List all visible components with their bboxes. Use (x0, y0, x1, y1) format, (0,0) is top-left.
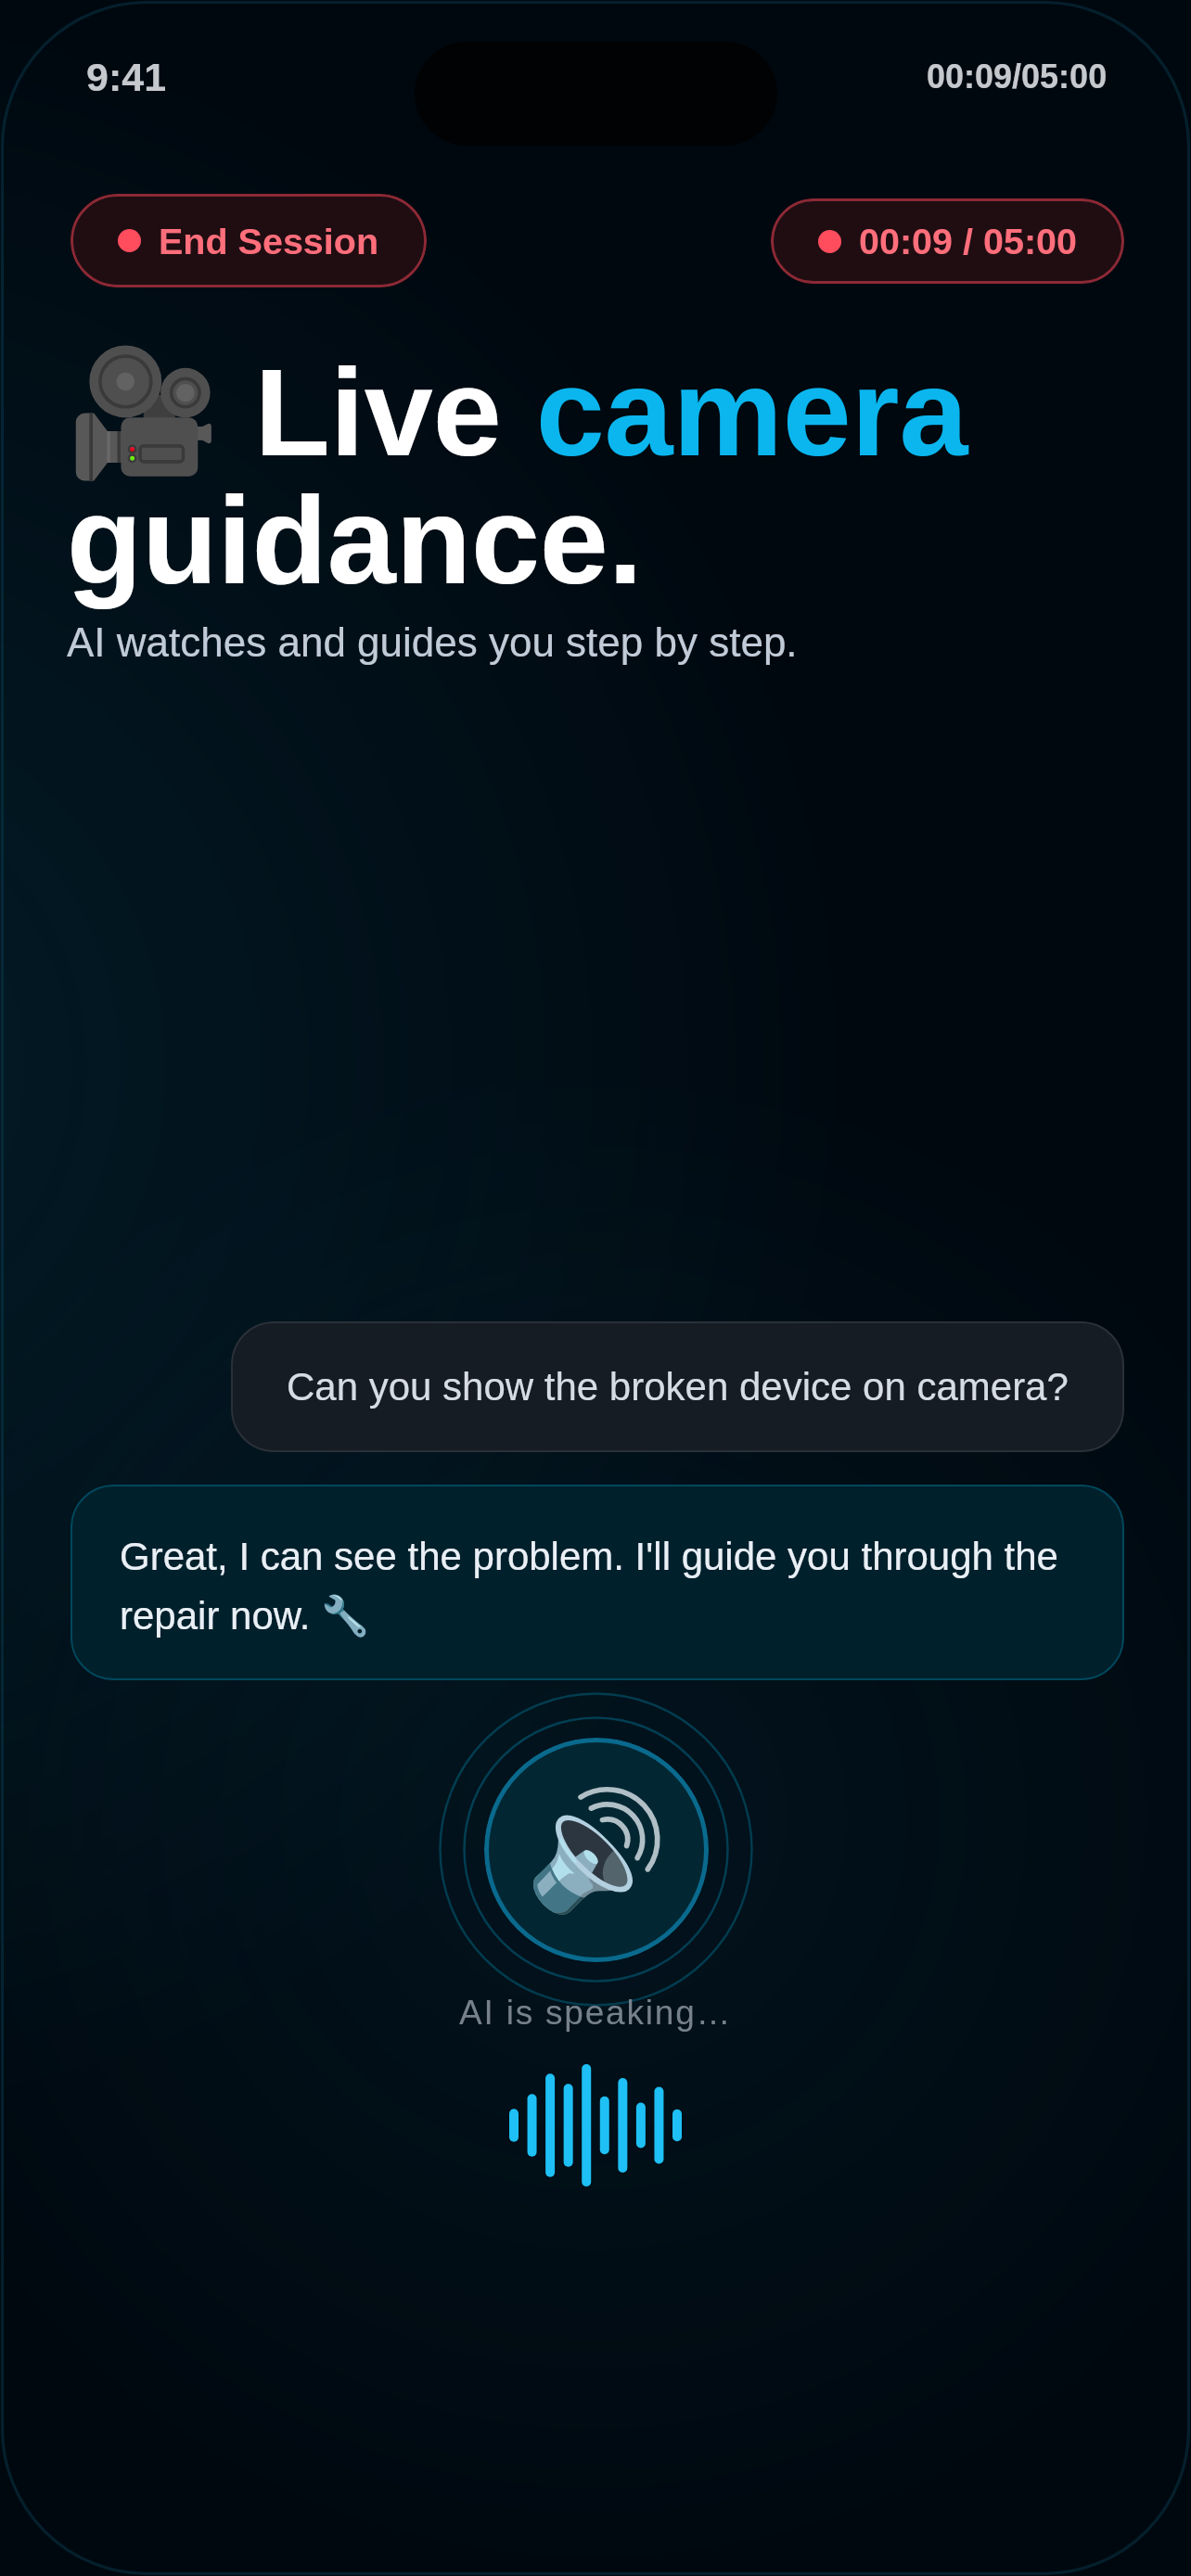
staticText: End Session (159, 221, 379, 261)
staticText: Can you show the broken device on camera… (287, 1364, 1069, 1409)
staticText: 00:09/05:00 (927, 57, 1108, 95)
button[interactable]: End Session (70, 194, 427, 287)
staticText: AI is speaking… (459, 1994, 733, 2032)
button[interactable]: 00:09 / 05:00 (771, 198, 1124, 284)
button[interactable]: Can you show the broken device on camera… (231, 1321, 1124, 1452)
button[interactable]: Great, I can see the problem. I'll guide… (70, 1485, 1124, 1680)
staticText: AI watches and guides you step by step. (67, 619, 798, 665)
button[interactable]: Speaker (484, 1738, 709, 1962)
staticText: 9:41 (86, 55, 167, 99)
staticText: Great, I can see the problem. I'll guide… (120, 1523, 1075, 1642)
staticText: 🔊 (525, 1783, 669, 1918)
staticText: 🎥 Live camera guidance. (67, 353, 1043, 608)
staticText: 00:09 / 05:00 (859, 221, 1077, 261)
